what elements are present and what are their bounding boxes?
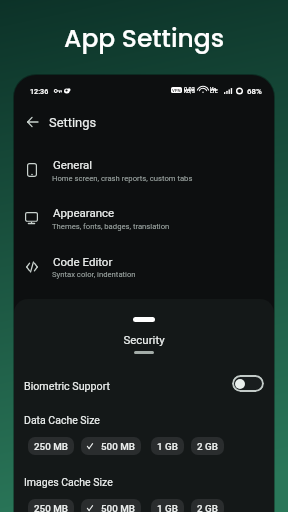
button[interactable] [14,374,274,396]
staticText: 250 MB [34,503,68,512]
staticText: App Settings [0,21,288,56]
button[interactable]: 500 MB [81,437,141,455]
staticText: 2 GB [197,503,218,512]
button[interactable]: 2 GB [191,437,224,455]
staticText: VPN [172,88,181,93]
staticText: Data Cache Size [24,414,100,426]
button[interactable]: 1 GB [151,437,184,455]
staticText: 12:36 [30,87,49,95]
staticText: KB/S [184,89,195,95]
staticText: 2 GB [197,441,218,452]
staticText: Themes, fonts, badges, translation [52,222,170,231]
staticText: Vo [210,86,217,92]
staticText: 250 MB [34,441,68,452]
staticText: Security [14,333,274,346]
staticText: 500 MB [101,503,135,512]
staticText: Settings [49,115,97,130]
button[interactable] [14,243,274,291]
button[interactable]: Back [20,110,44,134]
staticText: 500 MB [101,441,135,452]
button[interactable]: 2 GB [191,499,224,512]
button[interactable]: 250 MB [28,437,74,455]
staticText: Biometric Support [24,380,111,393]
staticText: Appearance [53,206,115,219]
button[interactable] [14,195,274,243]
staticText: 1 GB [157,503,178,512]
staticText: Syntax color, indentation [52,270,136,279]
button[interactable]: Biometric Support toggle [232,375,264,392]
staticText: Code Editor [53,255,113,268]
staticText: General [53,158,93,171]
staticText: Home screen, crash reports, custom tabs [52,174,193,183]
staticText: 68% [247,87,262,96]
button[interactable] [14,147,274,195]
staticText: LTE [210,89,218,95]
button[interactable]: 250 MB [28,499,74,512]
staticText: 1 GB [157,441,178,452]
staticText: Images Cache Size [24,476,113,488]
staticText: 0.02 [184,86,195,92]
button[interactable]: 500 MB [81,499,141,512]
button[interactable]: 1 GB [151,499,184,512]
